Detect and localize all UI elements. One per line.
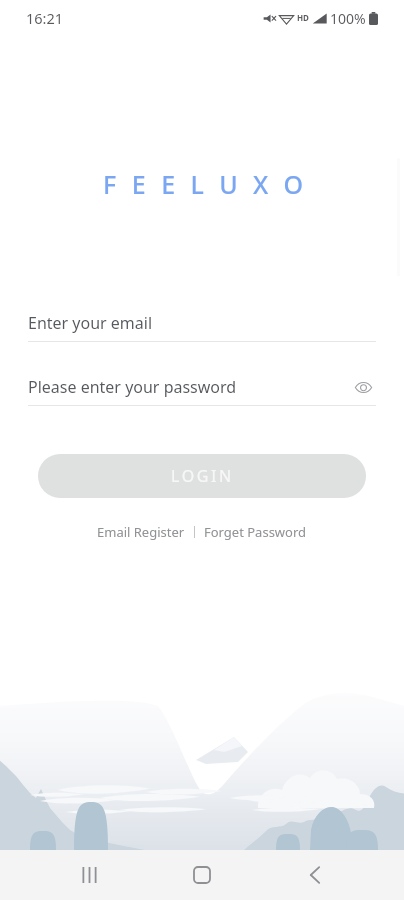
button[interactable]: Please enter your password xyxy=(28,369,376,405)
button[interactable]: Email Register xyxy=(95,521,187,543)
button[interactable]: Home xyxy=(174,850,230,900)
staticText: LOGIN xyxy=(171,465,234,487)
button[interactable]: Forget Password xyxy=(202,521,309,543)
button[interactable]: Recent apps xyxy=(61,850,117,900)
staticText: Please enter your password xyxy=(28,376,237,398)
button[interactable]: LOGIN xyxy=(38,454,366,498)
staticText: 100% xyxy=(330,9,366,28)
staticText: HD xyxy=(297,12,309,23)
staticText: Enter your email xyxy=(28,312,153,334)
button[interactable]: Show password xyxy=(350,374,376,400)
button[interactable]: Enter your email xyxy=(28,305,376,341)
button[interactable]: Back xyxy=(287,850,343,900)
staticText: FEELUXO xyxy=(103,167,319,201)
staticText: 16:21 xyxy=(26,8,64,28)
